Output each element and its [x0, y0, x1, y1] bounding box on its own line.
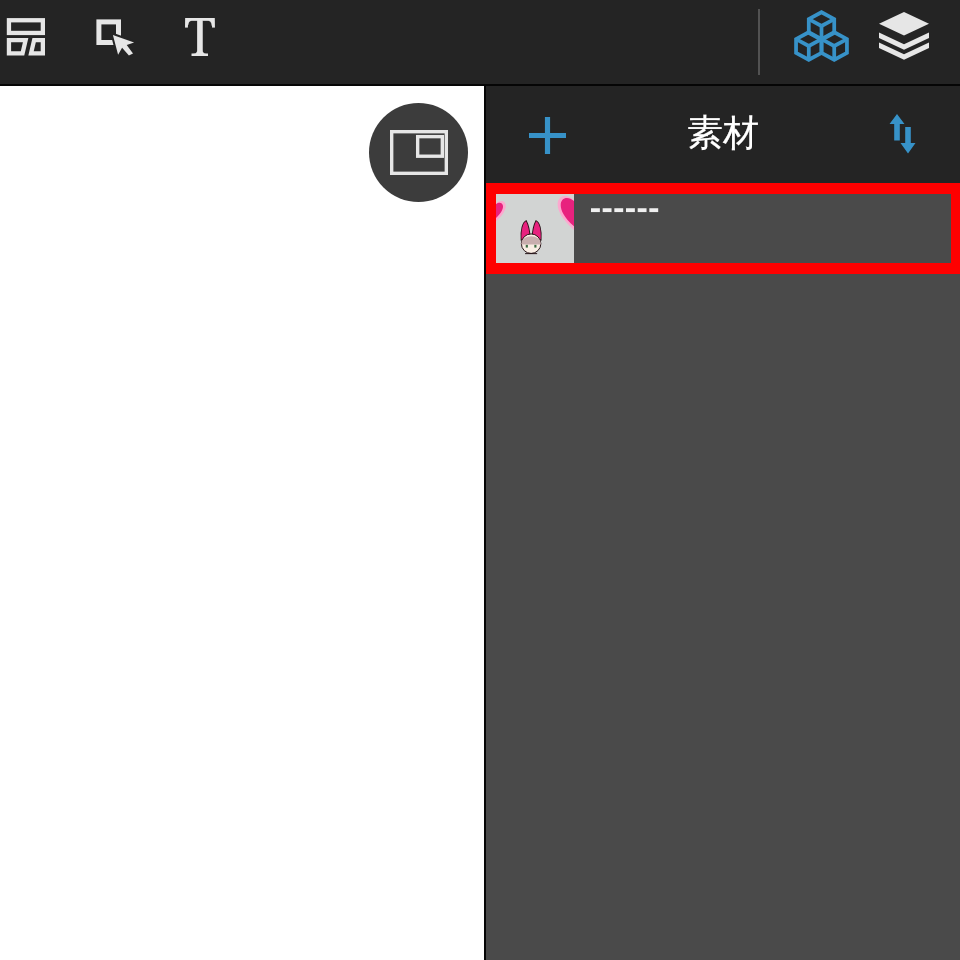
staticText: 素材: [687, 110, 759, 155]
button[interactable]: Add: [516, 104, 579, 167]
staticText: T: [184, 0, 216, 64]
button[interactable]: Layout: [0, 4, 56, 68]
button[interactable]: Artboard size: [369, 103, 468, 202]
button[interactable]: Layers: [872, 6, 936, 66]
button[interactable]: Text: [172, 0, 228, 64]
button[interactable]: Select: [88, 4, 144, 68]
button[interactable]: Sort: [871, 98, 933, 170]
button[interactable]: [486, 183, 960, 274]
button[interactable]: Assets: [789, 6, 853, 66]
button[interactable]: Artboard: [0, 86, 484, 960]
